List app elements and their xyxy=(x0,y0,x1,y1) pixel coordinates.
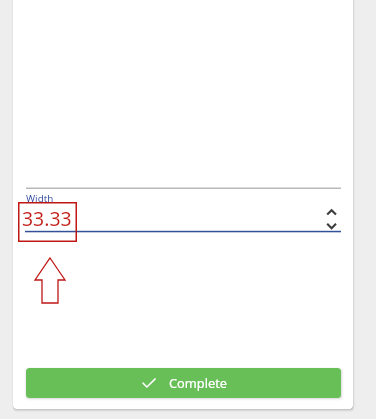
button[interactable]: Complete xyxy=(26,368,341,398)
staticText: 33.33 xyxy=(22,205,72,231)
button[interactable]: Increase or decrease width xyxy=(322,203,342,233)
staticText: Complete xyxy=(169,374,228,391)
staticText: Width xyxy=(26,192,54,205)
button[interactable]: Width xyxy=(22,190,320,233)
